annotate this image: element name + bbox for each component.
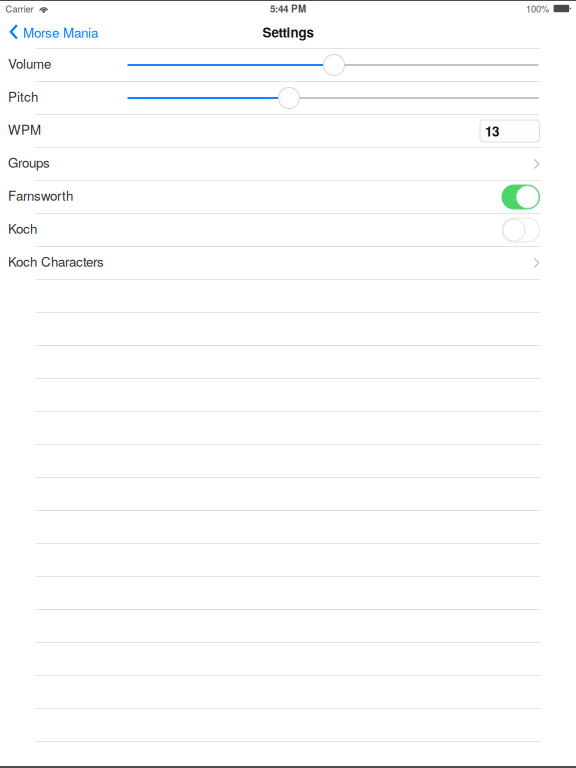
button[interactable]: Groups — [0, 148, 576, 180]
staticText: 5:44 PM — [270, 1, 306, 15]
button[interactable]: Koch — [502, 218, 539, 242]
staticText: 100% — [526, 2, 549, 15]
button[interactable]: Koch Characters — [0, 247, 576, 279]
staticText: Settings — [262, 22, 313, 41]
staticText: Koch — [8, 218, 37, 237]
button[interactable]: Morse Mania — [0, 16, 108, 48]
staticText: Carrier — [5, 2, 33, 15]
button[interactable]: Farnsworth — [502, 185, 539, 209]
button[interactable]: 13 — [480, 120, 539, 142]
staticText: Koch Characters — [8, 251, 104, 270]
staticText: Farnsworth — [8, 185, 73, 204]
staticText: 13 — [485, 121, 499, 140]
staticText: Groups — [8, 152, 50, 171]
staticText: Morse Mania — [23, 22, 98, 41]
staticText: WPM — [8, 119, 41, 138]
staticText: Volume — [8, 53, 51, 72]
staticText: Pitch — [8, 86, 38, 105]
